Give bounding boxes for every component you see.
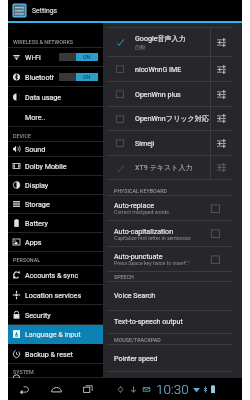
staticText: Simeji (135, 139, 155, 147)
button[interactable]: Location services (8, 285, 103, 304)
staticText: PERSONAL (13, 257, 41, 263)
button[interactable]: nicoWnnG IME (103, 57, 210, 81)
staticText: Language & input (25, 330, 81, 338)
staticText: Location services (25, 291, 82, 299)
button[interactable]: XT9 テキスト入力 (103, 156, 210, 179)
button[interactable]: Input method settings (211, 131, 242, 155)
button[interactable]: Auto-punctuate (103, 247, 242, 271)
button[interactable]: Battery (8, 214, 103, 232)
staticText: Auto-replace (114, 201, 154, 209)
staticText: OpenWnn plus (135, 90, 181, 98)
staticText: WIRELESS & NETWORKS (13, 39, 74, 45)
staticText: Correct mistyped words (114, 209, 169, 215)
staticText: Bluetooth (25, 73, 54, 81)
button[interactable]: Data usage (8, 87, 103, 106)
staticText: Security (25, 311, 51, 319)
staticText: Settings (32, 7, 58, 15)
button[interactable]: OpenWnnフリック対応 (103, 107, 210, 130)
button[interactable]: Accounts & sync (8, 266, 103, 284)
staticText: Text-to-speech output (114, 317, 183, 325)
staticText: SPEECH (114, 274, 134, 280)
button[interactable]: Input method settings (211, 57, 242, 81)
staticText: Accounts & sync (25, 271, 79, 279)
staticText: Display (25, 181, 49, 189)
button[interactable]: Bluetooth (8, 67, 103, 86)
button[interactable]: Storage (8, 195, 103, 213)
button[interactable]: Text-to-speech output (103, 311, 242, 333)
button[interactable]: Dolby Mobile (8, 157, 103, 175)
button[interactable]: ON (59, 53, 98, 61)
staticText: Pointer speed (114, 354, 158, 362)
staticText: Storage (25, 200, 50, 208)
button[interactable]: Voice Search (103, 282, 242, 310)
button[interactable]: Wi-Fi (8, 48, 103, 66)
staticText: ON (83, 54, 91, 60)
button[interactable]: Input method settings (211, 156, 242, 179)
staticText: ON (83, 74, 91, 80)
staticText: Data usage (25, 93, 62, 101)
button[interactable]: Auto-replace (103, 196, 242, 220)
staticText: 自動 (135, 44, 146, 51)
staticText: OpenWnnフリック対応 (135, 114, 209, 123)
staticText: 10:30 (156, 381, 189, 397)
button[interactable]: Pointer speed (103, 345, 242, 371)
button[interactable]: Auto-capitalization (103, 221, 242, 246)
button[interactable]: Backup & reset (8, 344, 103, 363)
button[interactable]: Input method settings (211, 28, 242, 56)
button[interactable]: Settings (8, 0, 242, 21)
staticText: Sound (25, 145, 46, 153)
staticText: DEVICE (13, 133, 32, 139)
staticText: Google音声入力 (135, 34, 186, 43)
button[interactable]: ON (59, 73, 98, 81)
button[interactable]: Recent apps (77, 378, 99, 400)
button[interactable]: Apps (8, 233, 103, 251)
button[interactable]: More.. (8, 107, 103, 126)
button[interactable]: OpenWnn plus (103, 82, 210, 106)
staticText: Wi-Fi (25, 53, 41, 61)
staticText: nicoWnnG IME (135, 65, 182, 73)
staticText: PHYSICAL KEYBOARD (114, 188, 167, 194)
button[interactable]: Home (45, 378, 67, 400)
staticText: Press Space key twice to insert"." (114, 260, 190, 266)
staticText: Dolby Mobile (25, 162, 67, 170)
staticText: SYSTEM (13, 369, 34, 375)
staticText: Apps (25, 238, 42, 246)
staticText: Capitalize first letter in sentences (114, 235, 191, 241)
button[interactable]: Security (8, 305, 103, 324)
button[interactable]: Input method settings (211, 82, 242, 106)
staticText: XT9 テキスト入力 (135, 163, 193, 172)
button[interactable]: Sound (8, 142, 103, 156)
button[interactable]: Input method settings (211, 107, 242, 130)
staticText: Auto-capitalization (114, 227, 174, 235)
button[interactable]: Display (8, 176, 103, 194)
staticText: Backup & reset (25, 350, 73, 358)
button[interactable]: Back (13, 378, 35, 400)
staticText: More.. (25, 113, 46, 121)
button[interactable]: Simeji (103, 131, 210, 155)
button[interactable]: Google音声入力 (103, 28, 210, 56)
staticText: Auto-punctuate (114, 252, 163, 260)
button[interactable]: Language & input (8, 325, 103, 343)
staticText: MOUSE/TRACKPAD (114, 337, 161, 343)
staticText: Voice Search (114, 291, 156, 299)
staticText: Battery (25, 219, 48, 227)
